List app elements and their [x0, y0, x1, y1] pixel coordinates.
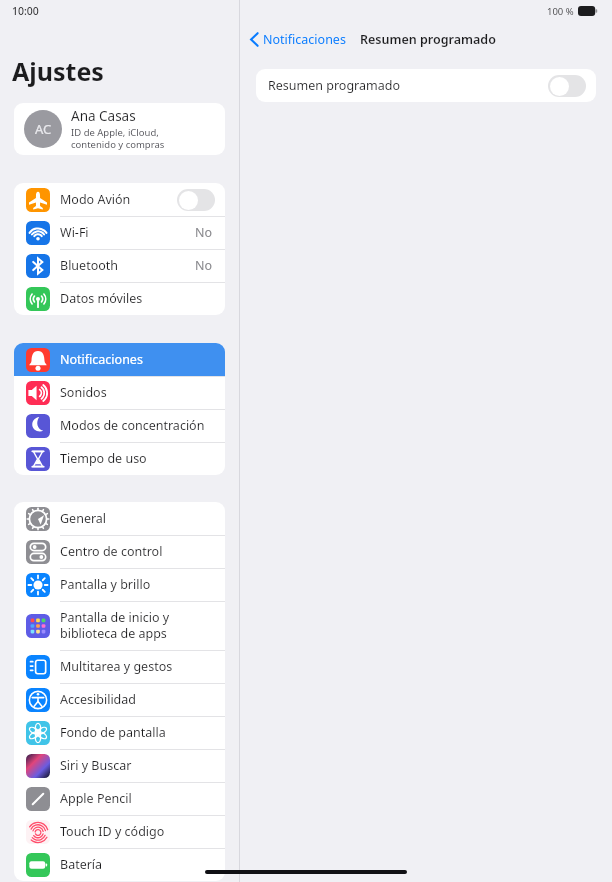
button[interactable]: Bluetooth — [14, 249, 225, 282]
button[interactable]: Tiempo de uso — [14, 442, 225, 475]
staticText: Fondo de pantalla — [60, 724, 166, 741]
button[interactable]: Modos de concentración — [14, 409, 225, 442]
button[interactable]: Touch ID y código — [14, 815, 225, 848]
button[interactable]: Fondo de pantalla — [14, 716, 225, 749]
button[interactable]: General — [14, 502, 225, 535]
button[interactable]: Resumen programado — [256, 69, 596, 102]
staticText: 100 % — [547, 5, 574, 18]
staticText: Ajustes — [12, 54, 104, 88]
staticText: Modos de concentración — [60, 417, 205, 434]
staticText: No — [195, 224, 213, 241]
staticText: Notificaciones — [263, 31, 346, 48]
button[interactable]: Datos móviles — [14, 282, 225, 315]
staticText: Wi-Fi — [60, 224, 89, 241]
staticText: ID de Apple, iCloud, contenido y compras — [71, 126, 165, 151]
staticText: 10:00 — [12, 4, 39, 18]
staticText: Apple Pencil — [60, 790, 132, 807]
button[interactable]: AC — [14, 103, 225, 155]
staticText: Datos móviles — [60, 290, 143, 307]
staticText: Siri y Buscar — [60, 757, 132, 774]
button[interactable]: Siri y Buscar — [14, 749, 225, 782]
button[interactable]: Notificaciones — [240, 24, 352, 54]
button[interactable]: Sonidos — [14, 376, 225, 409]
staticText: No — [195, 257, 213, 274]
staticText: Pantalla y brillo — [60, 576, 151, 593]
button[interactable]: Accesibilidad — [14, 683, 225, 716]
staticText: Accesibilidad — [60, 691, 137, 708]
button[interactable]: Activar — [548, 75, 586, 97]
staticText: Ana Casas — [71, 107, 136, 125]
staticText: Sonidos — [60, 384, 107, 401]
staticText: Pantalla de inicio y biblioteca de apps — [60, 609, 215, 642]
button[interactable]: Batería — [14, 848, 225, 881]
staticText: Touch ID y código — [60, 823, 165, 840]
staticText: Multitarea y gestos — [60, 658, 173, 675]
staticText: AC — [35, 120, 52, 138]
staticText: Centro de control — [60, 543, 163, 560]
button[interactable]: Apple Pencil — [14, 782, 225, 815]
button[interactable]: Modo Avión — [14, 183, 225, 216]
button[interactable]: Pantalla de inicio y biblioteca de apps — [14, 601, 225, 650]
staticText: Bluetooth — [60, 257, 119, 274]
staticText: General — [60, 510, 107, 527]
button[interactable]: Activar — [177, 189, 215, 211]
staticText: Resumen programado — [360, 31, 496, 48]
button[interactable]: Wi-Fi — [14, 216, 225, 249]
staticText: Resumen programado — [268, 77, 400, 94]
button[interactable]: Multitarea y gestos — [14, 650, 225, 683]
button[interactable]: Centro de control — [14, 535, 225, 568]
button[interactable]: Pantalla y brillo — [14, 568, 225, 601]
staticText: Batería — [60, 856, 103, 873]
staticText: Notificaciones — [60, 351, 143, 368]
staticText: Tiempo de uso — [60, 450, 147, 467]
button[interactable]: Notificaciones — [14, 343, 225, 376]
staticText: Modo Avión — [60, 191, 131, 208]
